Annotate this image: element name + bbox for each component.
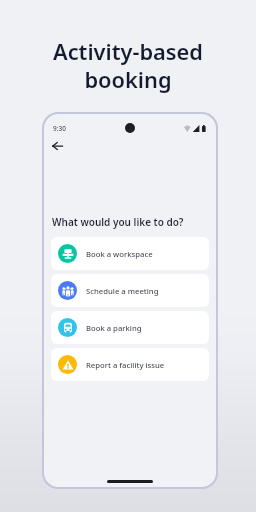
staticText: Book a workspace (86, 249, 153, 259)
button[interactable]: Book a parking (51, 311, 209, 344)
staticText: Report a facility issue (86, 360, 165, 370)
button[interactable]: Schedule a meeting (51, 274, 209, 307)
button[interactable]: Book a workspace (51, 237, 209, 270)
staticText: Schedule a meeting (86, 286, 159, 296)
staticText: What would you like to do? (52, 215, 184, 229)
button[interactable]: Report a facility issue (51, 348, 209, 381)
staticText: Activity-based booking (0, 37, 256, 94)
button[interactable]: Back (47, 136, 67, 156)
staticText: Book a parking (86, 323, 142, 333)
staticText: 9:30 (53, 124, 66, 133)
